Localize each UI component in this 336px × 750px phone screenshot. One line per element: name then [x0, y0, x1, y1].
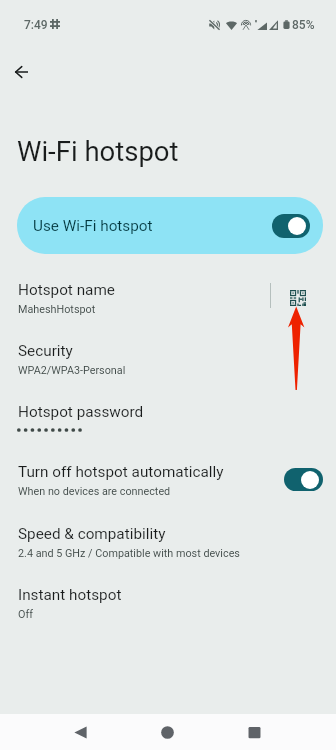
button[interactable]: Turn off hotspot automatically	[0, 458, 336, 514]
staticText: Off	[18, 608, 33, 621]
staticText: Hotspot name	[18, 281, 115, 299]
button[interactable]: Share hotspot QR code	[281, 280, 315, 314]
button[interactable]: Toggle	[284, 468, 323, 491]
staticText: When no devices are connected	[18, 485, 171, 498]
staticText: 85%	[292, 18, 315, 32]
button[interactable]: Back	[1, 51, 42, 92]
button[interactable]: Home	[139, 714, 195, 750]
button[interactable]: Use Wi-Fi hotspot	[17, 197, 323, 254]
staticText: Instant hotspot	[18, 586, 122, 604]
staticText: Hotspot password	[18, 403, 144, 421]
button[interactable]: Hotspot name	[0, 276, 264, 332]
staticText: 7:49	[24, 18, 48, 32]
staticText: Speed & compatibility	[18, 525, 166, 543]
button[interactable]: Security	[0, 337, 336, 393]
button[interactable]: Hotspot password	[0, 398, 336, 454]
button[interactable]: Recent apps	[226, 714, 282, 750]
staticText: Security	[18, 342, 73, 360]
button[interactable]: Back	[52, 714, 108, 750]
staticText: Turn off hotspot automatically	[18, 463, 224, 481]
button[interactable]: Instant hotspot	[0, 581, 336, 637]
button[interactable]: Toggle	[272, 214, 310, 238]
staticText: Use Wi-Fi hotspot	[33, 217, 153, 235]
button[interactable]: Speed & compatibility	[0, 520, 336, 576]
staticText: MaheshHotspot	[18, 303, 96, 316]
staticText: WPA2/WPA3-Personal	[18, 364, 126, 377]
staticText: Wi-Fi hotspot	[17, 135, 179, 167]
staticText: 2.4 and 5 GHz / Compatible with most dev…	[18, 547, 240, 560]
